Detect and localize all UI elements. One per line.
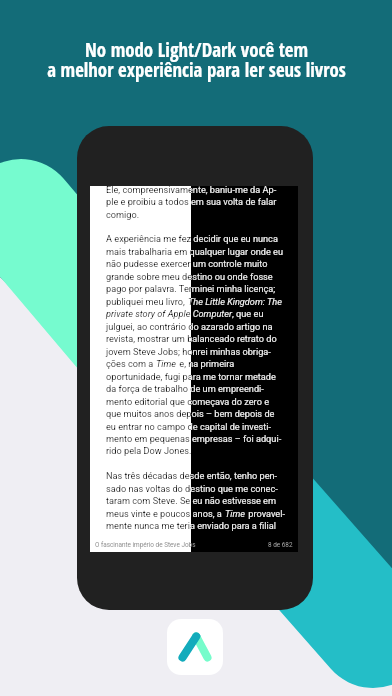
button[interactable]: App icon — [167, 619, 223, 675]
staticText: eu entrar no campo de capital de investi… — [191, 421, 272, 432]
staticText: sado nas voltas do destino que me conec- — [191, 483, 278, 494]
staticText: que muitos anos depois – bem depois de — [106, 408, 191, 419]
staticText: revista, mostrar um balanceado retrato d… — [106, 333, 191, 344]
staticText: Time — [225, 508, 246, 519]
staticText: private story of Apple Computer — [191, 308, 232, 319]
staticText: julguei, ao contrário do azarado artigo … — [191, 321, 273, 332]
staticText: provavel- — [246, 508, 285, 519]
staticText: A experiência me fez decidir que eu nunc… — [106, 233, 191, 244]
staticText: mente nunca me teria enviado para a fili… — [106, 520, 191, 531]
staticText: Nas três décadas desde então, tenho pen- — [106, 470, 191, 481]
staticText: mento editorial que começava do zero e — [106, 396, 191, 407]
staticText: julguei, ao contrário do azarado artigo … — [106, 321, 191, 332]
staticText: não pudesse exercer um controle muito — [191, 258, 268, 269]
staticText: pago por palavra. Terminei minha licença… — [191, 283, 276, 294]
staticText: jovem Steve Jobs; honrei minhas obriga- — [106, 346, 191, 357]
staticText: mais trabalharia em qualquer lugar onde … — [106, 246, 191, 257]
staticText: No modo Light/Dark você tem a melhor exp… — [47, 37, 346, 82]
staticText: pago por palavra. Terminei minha licença… — [106, 283, 191, 294]
staticText: Time — [156, 358, 177, 369]
staticText: que muitos anos depois – bem depois de — [191, 408, 275, 419]
staticText: e, na primeira — [191, 358, 235, 369]
staticText: A experiência me fez decidir que eu nunc… — [191, 233, 278, 244]
staticText: da força de trabalho de um empreendi- — [106, 383, 191, 394]
staticText: mais trabalharia em qualquer lugar onde … — [191, 246, 284, 257]
staticText: taram com Steve. Se eu não estivesse em — [106, 495, 191, 506]
staticText: O fascinante império de Steve Jobs — [95, 541, 191, 549]
staticText: Ele, compreensivamente, baniu-me da Ap- — [191, 186, 277, 195]
staticText: Ele, compreensivamente, baniu-me da Ap- — [106, 186, 191, 195]
staticText: sado nas voltas do destino que me conec- — [106, 483, 191, 494]
staticText: comigo. — [106, 209, 140, 220]
staticText: , que eu — [232, 308, 264, 319]
staticText: mento em pequenas empresas – foi adqui- — [106, 433, 191, 444]
staticText: taram com Steve. Se eu não estivesse em — [191, 495, 276, 506]
staticText: Nas três décadas desde então, tenho pen- — [191, 470, 278, 481]
staticText: revista, mostrar um balanceado retrato d… — [191, 333, 277, 344]
staticText: grande sobre meu destino ou onde fosse — [191, 271, 273, 282]
staticText: jovem Steve Jobs; honrei minhas obriga- — [191, 346, 271, 357]
staticText: The Little Kingdom: The — [191, 296, 282, 307]
staticText: publiquei meu livro, — [106, 296, 188, 307]
staticText: eu entrar no campo de capital de investi… — [106, 421, 191, 432]
staticText: da força de trabalho de um empreendi- — [191, 383, 264, 394]
staticText: oportunidade, fugi para me tornar metade — [191, 371, 276, 382]
staticText: grande sobre meu destino ou onde fosse — [106, 271, 191, 282]
staticText: ções com a — [106, 358, 156, 369]
staticText: O fascinante império de Steve Jobs — [191, 541, 196, 549]
staticText: The Little Kingdom: The — [188, 296, 191, 307]
staticText: meus vinte e poucos anos, a — [106, 508, 191, 519]
staticText: mento em pequenas empresas – foi adqui- — [191, 433, 282, 444]
staticText: e, na primeira — [177, 358, 191, 369]
staticText: oportunidade, fugi para me tornar metade — [106, 371, 191, 382]
staticText: ple e proibiu a todos em sua volta de fa… — [191, 196, 277, 207]
staticText: private story of Apple Computer — [106, 308, 191, 319]
staticText: mente nunca me teria enviado para a fili… — [191, 520, 276, 531]
staticText: rido pela Dow Jones. — [106, 445, 191, 456]
staticText: meus vinte e poucos anos, a — [191, 508, 225, 519]
staticText: ple e proibiu a todos em sua volta de fa… — [106, 196, 191, 207]
staticText: mento editorial que começava do zero e — [191, 396, 270, 407]
staticText: 8 de 682 — [268, 541, 293, 549]
staticText: não pudesse exercer um controle muito — [106, 258, 191, 269]
